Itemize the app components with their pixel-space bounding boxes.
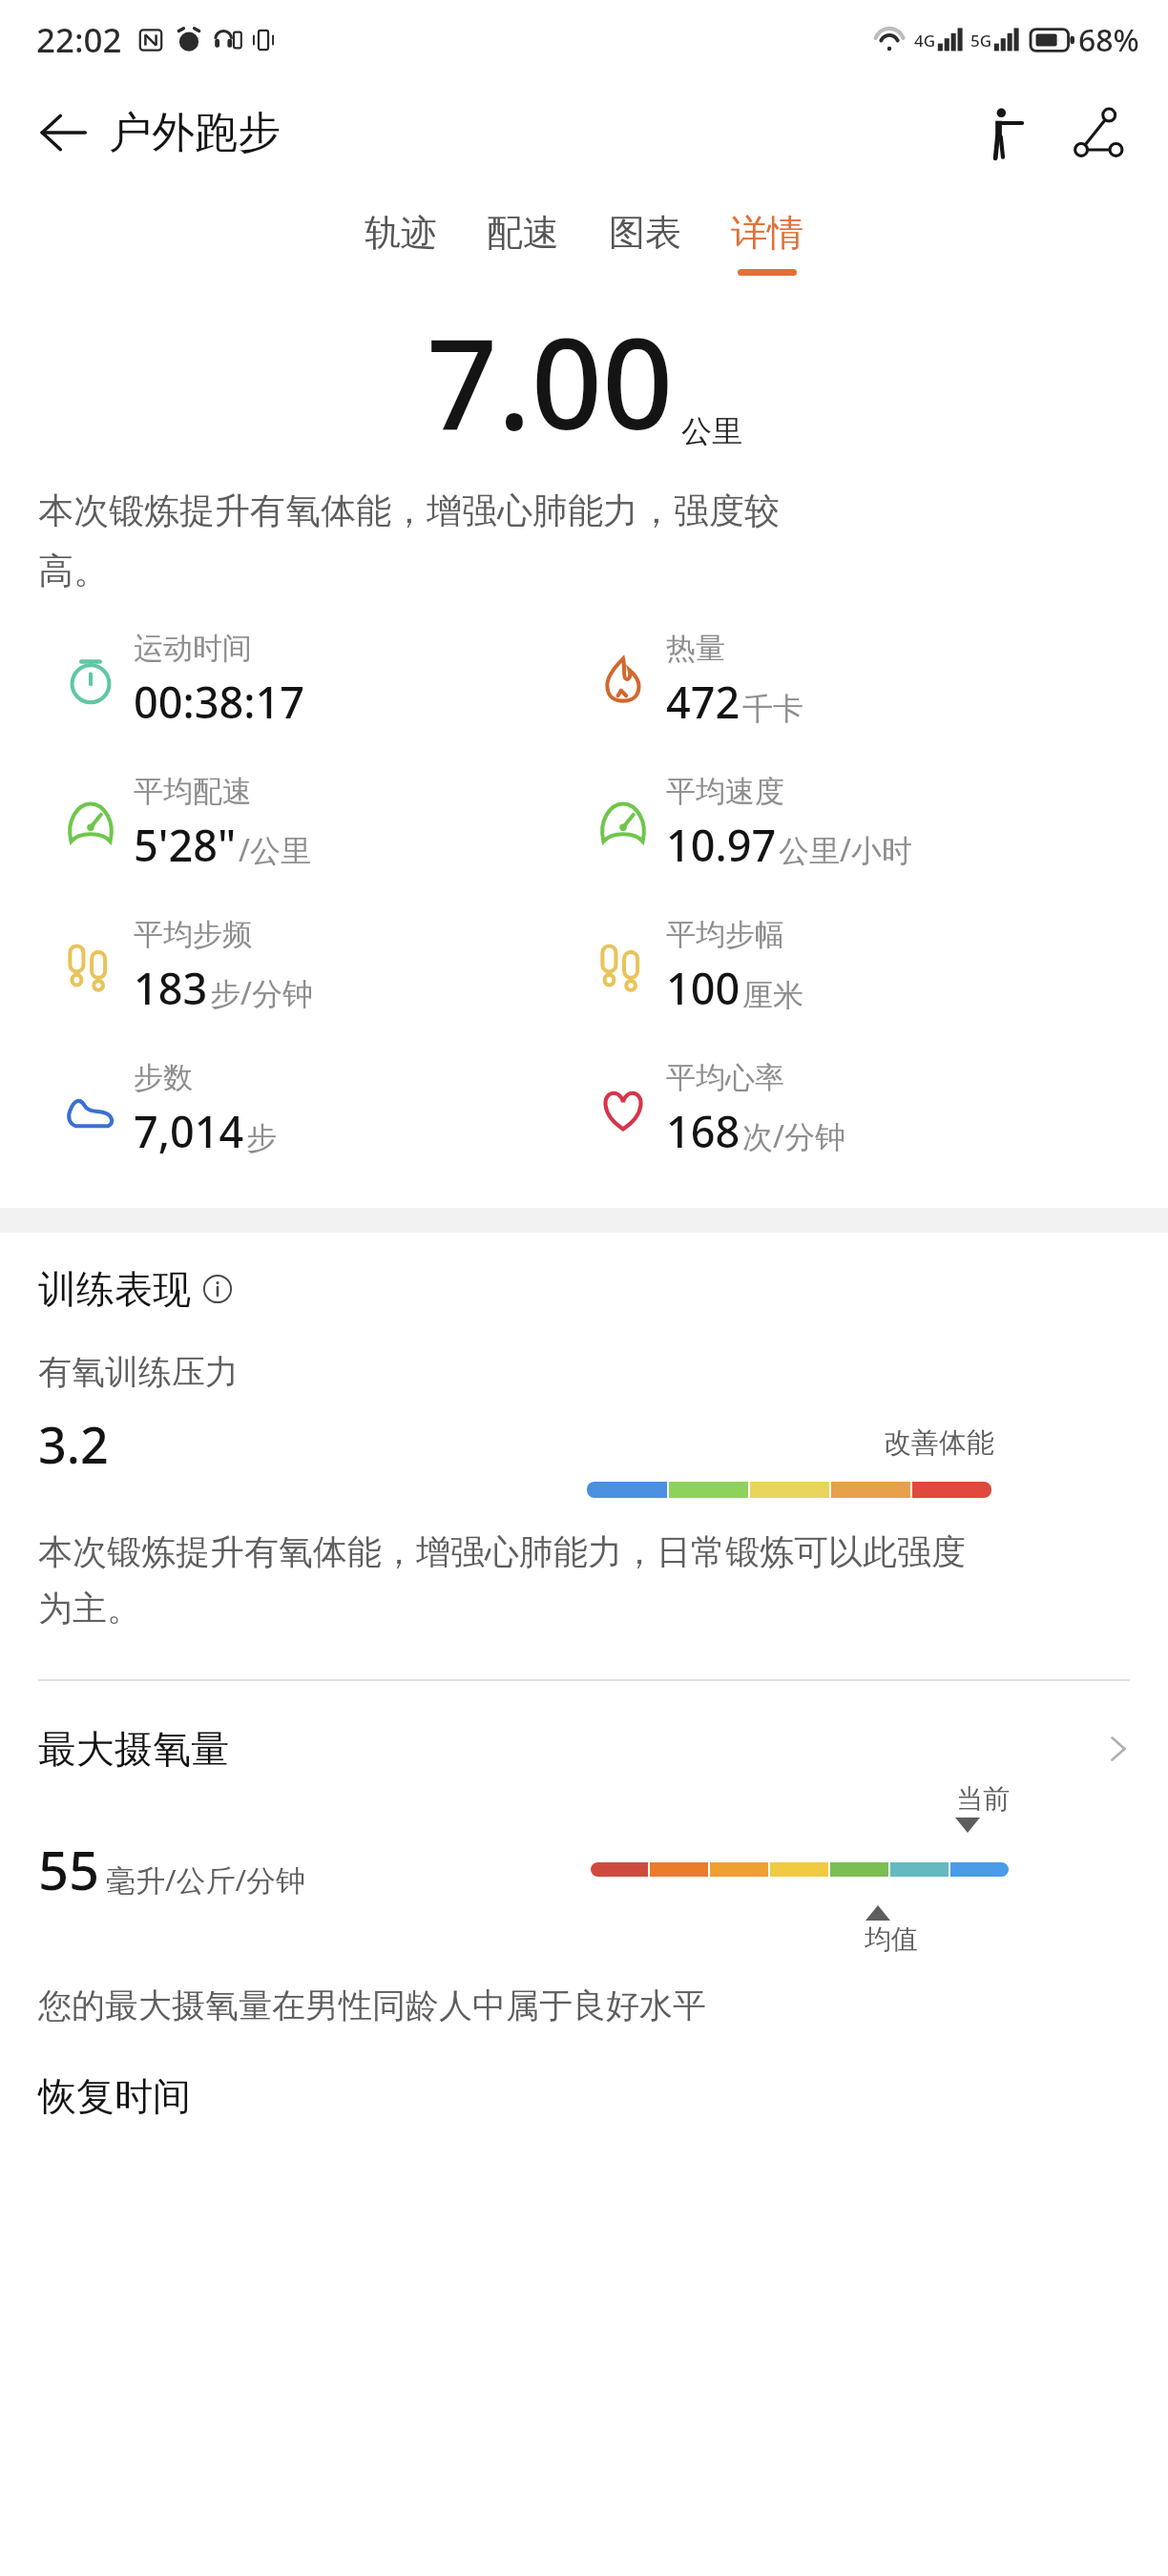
staticText: 运动时间 (134, 630, 252, 667)
button[interactable]: 配速 (462, 204, 584, 281)
staticText: 详情 (731, 210, 803, 256)
staticText: 平均配速 (134, 773, 252, 810)
button[interactable]: 平均速度 (584, 769, 1168, 878)
staticText: 5G (970, 30, 992, 52)
staticText: 7.00 (427, 297, 674, 466)
staticText: 本次锻炼提升有氧体能，增强心肺能力，强度较 (38, 488, 780, 533)
staticText: 68% (1078, 19, 1139, 61)
staticText: 毫升/公斤/分钟 (106, 1859, 306, 1900)
staticText: 公里 (681, 412, 742, 450)
staticText: 改善体能 (884, 1425, 994, 1461)
staticText: 3.2 (38, 1410, 109, 1478)
button[interactable]: 步数 (0, 1055, 584, 1164)
staticText: 有氧训练压力 (38, 1351, 239, 1393)
staticText: 高。 (38, 549, 109, 593)
staticText: 轨迹 (365, 210, 437, 256)
staticText: 平均速度 (666, 773, 784, 810)
staticText: 22:02 (36, 17, 122, 63)
staticText: 10.97 (666, 816, 777, 874)
staticText: 168 (666, 1102, 740, 1160)
staticText: 训练表现 (38, 1265, 191, 1313)
staticText: 热量 (666, 630, 725, 667)
button[interactable]: 平均配速 (0, 769, 584, 878)
staticText: 平均步频 (134, 916, 252, 953)
staticText: 00:38:17 (134, 673, 304, 731)
staticText: 户外跑步 (109, 106, 281, 160)
staticText: 恢复时间 (38, 2072, 191, 2120)
staticText: 当前 (956, 1782, 1010, 1816)
staticText: 千卡 (742, 690, 803, 728)
staticText: 最大摄氧量 (38, 1725, 229, 1773)
staticText: 183 (134, 959, 208, 1017)
button[interactable]: 训练表现 (38, 1265, 233, 1313)
staticText: 步/分钟 (210, 972, 313, 1014)
staticText: 7,014 (134, 1102, 244, 1160)
staticText: 配速 (487, 210, 559, 256)
button[interactable]: Runner (962, 92, 1044, 174)
staticText: 55 (38, 1833, 100, 1905)
staticText: 4G (914, 30, 936, 52)
staticText: 为主。 (38, 1587, 141, 1630)
staticText: 您的最大摄氧量在男性同龄人中属于良好水平 (38, 1984, 706, 2026)
staticText: 厘米 (742, 976, 803, 1014)
button[interactable]: 轨迹 (340, 204, 462, 281)
staticText: 图表 (609, 210, 681, 256)
staticText: 公里/小时 (779, 829, 912, 871)
button[interactable]: Share (1057, 92, 1139, 174)
staticText: 次/分钟 (742, 1115, 845, 1157)
staticText: 均值 (865, 1922, 918, 1956)
staticText: 本次锻炼提升有氧体能，增强心肺能力，日常锻炼可以此强度 (38, 1530, 966, 1573)
button[interactable]: 运动时间 (0, 626, 584, 735)
staticText: 472 (666, 673, 740, 731)
button[interactable]: Back (27, 96, 99, 169)
staticText: 步数 (134, 1059, 193, 1096)
staticText: 5'28" (134, 816, 237, 874)
staticText: 平均步幅 (666, 916, 784, 953)
button[interactable]: 平均心率 (584, 1055, 1168, 1164)
button[interactable]: 详情 (706, 204, 828, 281)
staticText: 步 (246, 1119, 277, 1157)
staticText: 100 (666, 959, 740, 1017)
button[interactable]: 平均步幅 (584, 912, 1168, 1021)
button[interactable]: 平均步频 (0, 912, 584, 1021)
staticText: /公里 (239, 829, 311, 871)
button[interactable]: 热量 (584, 626, 1168, 735)
button[interactable]: 最大摄氧量 (0, 1725, 1168, 1773)
button[interactable]: 图表 (584, 204, 706, 281)
staticText: 平均心率 (666, 1059, 784, 1096)
